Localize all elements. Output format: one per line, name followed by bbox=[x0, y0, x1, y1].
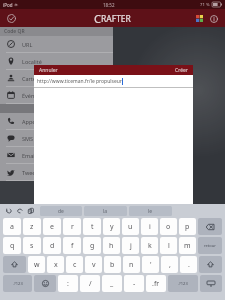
button[interactable]: a bbox=[3, 218, 21, 235]
button[interactable]: y bbox=[103, 218, 120, 235]
staticText: b bbox=[110, 260, 115, 270]
staticText: - bbox=[133, 279, 136, 289]
staticText: j bbox=[130, 241, 132, 251]
button[interactable]: Événement bbox=[0, 87, 113, 103]
button[interactable]: redo bbox=[14, 205, 25, 216]
staticText: f bbox=[71, 241, 74, 251]
button[interactable]: k bbox=[141, 237, 158, 254]
staticText: t bbox=[91, 222, 94, 232]
button[interactable]: r bbox=[63, 218, 81, 235]
button[interactable]: Appel téléphonique bbox=[0, 113, 113, 129]
staticText: q bbox=[10, 241, 15, 251]
staticText: k bbox=[148, 241, 152, 251]
button[interactable]: de bbox=[40, 206, 82, 216]
button[interactable]: ' bbox=[142, 256, 159, 273]
staticText: retour bbox=[204, 243, 216, 248]
button[interactable]: / bbox=[80, 275, 100, 292]
button[interactable]: Couleurs bbox=[193, 12, 206, 25]
button[interactable]: t bbox=[83, 218, 101, 235]
button[interactable]: SMS bbox=[0, 130, 113, 146]
button[interactable]: Majuscule bbox=[3, 256, 26, 273]
button[interactable]: Valider bbox=[5, 12, 18, 25]
button[interactable]: Emoji bbox=[34, 275, 56, 292]
button[interactable]: .fr bbox=[146, 275, 166, 292]
button[interactable]: . bbox=[180, 256, 197, 273]
staticText: Email bbox=[22, 152, 37, 159]
button[interactable]: n bbox=[123, 256, 140, 273]
staticText: Localité bbox=[22, 58, 42, 65]
button[interactable]: h bbox=[103, 237, 120, 254]
staticText: m bbox=[184, 241, 191, 251]
staticText: 71 % bbox=[200, 2, 210, 8]
button[interactable]: Email bbox=[0, 147, 113, 163]
button[interactable]: la bbox=[84, 206, 127, 216]
button[interactable]: c bbox=[66, 256, 83, 273]
button[interactable]: : bbox=[58, 275, 78, 292]
button[interactable]: Carte de visite bbox=[0, 70, 113, 86]
button[interactable]: l bbox=[160, 237, 177, 254]
staticText: h bbox=[109, 241, 114, 251]
button[interactable]: v bbox=[85, 256, 102, 273]
button[interactable]: le bbox=[129, 206, 172, 216]
button[interactable]: d bbox=[43, 237, 61, 254]
staticText: le bbox=[148, 208, 153, 215]
button[interactable]: u bbox=[122, 218, 139, 235]
staticText: e bbox=[50, 222, 54, 232]
staticText: 18:52 bbox=[103, 2, 115, 8]
staticText: r bbox=[71, 222, 74, 232]
button[interactable]: f bbox=[63, 237, 81, 254]
button[interactable]: b bbox=[104, 256, 121, 273]
button[interactable]: URL bbox=[0, 36, 113, 52]
button[interactable]: - bbox=[124, 275, 144, 292]
button[interactable]: Effacer bbox=[198, 218, 222, 235]
button[interactable]: Masquer le clavier bbox=[200, 275, 222, 292]
staticText: y bbox=[110, 222, 114, 232]
button[interactable]: Informations bbox=[208, 12, 219, 25]
button[interactable]: s bbox=[23, 237, 41, 254]
button[interactable]: .?123 bbox=[3, 275, 32, 292]
staticText: i bbox=[149, 222, 151, 232]
staticText: .?123 bbox=[13, 281, 23, 286]
staticText: Annuler bbox=[39, 67, 58, 74]
button[interactable]: undo bbox=[3, 205, 14, 216]
button[interactable]: Tweet bbox=[0, 164, 113, 180]
staticText: RAFTER bbox=[101, 13, 131, 25]
button[interactable]: g bbox=[83, 237, 101, 254]
staticText: x bbox=[54, 260, 58, 270]
staticText: c bbox=[73, 260, 77, 270]
staticText: v bbox=[92, 260, 96, 270]
staticText: Tweet bbox=[22, 169, 38, 176]
staticText: iPod bbox=[3, 2, 13, 8]
button[interactable]: p bbox=[179, 218, 196, 235]
button[interactable]: , bbox=[161, 256, 178, 273]
button[interactable]: _ bbox=[102, 275, 122, 292]
staticText: ' bbox=[150, 260, 152, 270]
button[interactable]: i bbox=[141, 218, 158, 235]
button[interactable]: copy bbox=[25, 205, 36, 216]
button[interactable]: Localité bbox=[0, 53, 113, 69]
staticText: C bbox=[94, 11, 101, 26]
staticText: w bbox=[34, 260, 40, 270]
button[interactable]: e bbox=[43, 218, 61, 235]
button[interactable]: x bbox=[47, 256, 64, 273]
staticText: de bbox=[58, 208, 64, 215]
button[interactable]: retour bbox=[198, 237, 222, 254]
button[interactable]: Annuler bbox=[38, 67, 59, 74]
staticText: . bbox=[188, 260, 190, 270]
button[interactable]: Majuscule bbox=[199, 256, 222, 273]
button[interactable]: Créer bbox=[174, 67, 189, 74]
button[interactable]: w bbox=[28, 256, 45, 273]
button[interactable]: j bbox=[122, 237, 139, 254]
button[interactable]: q bbox=[3, 237, 21, 254]
staticText: Carte de visite bbox=[22, 75, 59, 82]
button[interactable]: .?123 bbox=[168, 275, 198, 292]
staticText: Appel téléphonique bbox=[22, 118, 73, 125]
staticText: Événement bbox=[22, 92, 52, 99]
staticText: URL bbox=[22, 41, 33, 48]
staticText: d bbox=[50, 241, 55, 251]
button[interactable]: o bbox=[160, 218, 177, 235]
staticText: n bbox=[129, 260, 134, 270]
button[interactable]: m bbox=[179, 237, 196, 254]
button[interactable]: z bbox=[23, 218, 41, 235]
button[interactable]: http://www.ticeman.fr/le propulseur bbox=[34, 75, 193, 87]
